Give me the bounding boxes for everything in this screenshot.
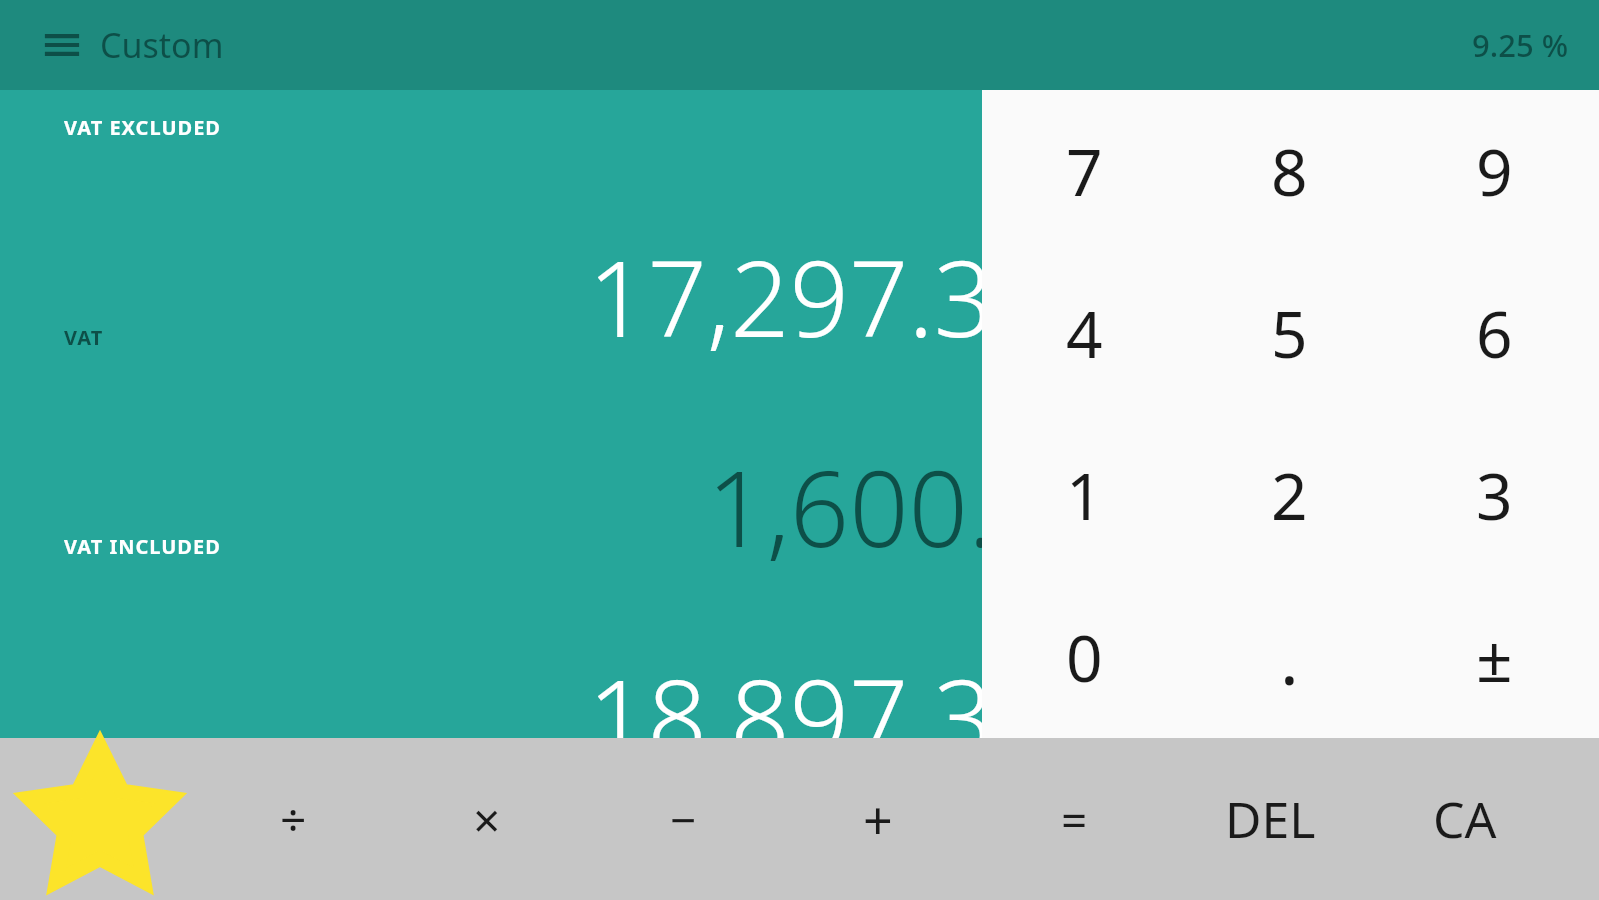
staticText: DEL xyxy=(1225,785,1316,853)
button[interactable]: 7 xyxy=(982,90,1187,252)
button[interactable]: + xyxy=(781,738,975,900)
staticText: 1 xyxy=(1066,452,1103,539)
staticText: = xyxy=(1061,788,1088,851)
button[interactable]: DEL xyxy=(1173,738,1367,900)
button[interactable]: ÷ xyxy=(196,738,390,900)
button[interactable]: CA xyxy=(1368,738,1562,900)
staticText: CA xyxy=(1433,785,1497,853)
button[interactable]: = xyxy=(977,738,1171,900)
button[interactable]: Favorite xyxy=(18,738,182,900)
button[interactable]: 9 xyxy=(1392,90,1597,252)
button[interactable]: . xyxy=(1187,576,1392,738)
button[interactable]: Custom xyxy=(100,22,224,68)
staticText: 18,897.3 xyxy=(588,645,994,787)
staticText: 2 xyxy=(1271,452,1308,539)
staticText: 8 xyxy=(1271,128,1308,215)
staticText: Custom xyxy=(100,22,224,68)
button[interactable]: 1 xyxy=(982,414,1187,576)
staticText: VAT xyxy=(64,324,104,351)
button[interactable]: × xyxy=(390,738,584,900)
staticText: 9 xyxy=(1476,128,1513,215)
button[interactable]: ± xyxy=(1392,576,1597,738)
staticText: 1,600. xyxy=(707,436,994,578)
button[interactable]: 5 xyxy=(1187,252,1392,414)
button[interactable]: 2 xyxy=(1187,414,1392,576)
button[interactable]: 9.25 % xyxy=(1472,24,1569,66)
staticText: 4 xyxy=(1066,290,1103,377)
staticText: . xyxy=(1280,610,1299,705)
button[interactable]: 0 xyxy=(982,576,1187,738)
staticText: 5 xyxy=(1271,290,1308,377)
button[interactable]: 3 xyxy=(1392,414,1597,576)
staticText: 17,297.3 xyxy=(588,226,994,368)
staticText: ± xyxy=(1476,614,1513,701)
staticText: 0 xyxy=(1066,614,1103,701)
button[interactable]: − xyxy=(586,738,780,900)
button[interactable]: 6 xyxy=(1392,252,1597,414)
button[interactable]: 8 xyxy=(1187,90,1392,252)
staticText: VAT EXCLUDED xyxy=(64,114,221,141)
staticText: 7 xyxy=(1066,128,1103,215)
staticText: − xyxy=(670,788,697,851)
button[interactable]: 4 xyxy=(982,252,1187,414)
button[interactable]: Menu xyxy=(34,17,90,73)
staticText: 3 xyxy=(1476,452,1513,539)
staticText: VAT INCLUDED xyxy=(64,533,221,560)
staticText: 6 xyxy=(1476,290,1513,377)
staticText: ÷ xyxy=(280,788,307,851)
staticText: × xyxy=(473,787,501,852)
staticText: + xyxy=(863,784,893,855)
staticText: 9.25 % xyxy=(1472,24,1569,66)
